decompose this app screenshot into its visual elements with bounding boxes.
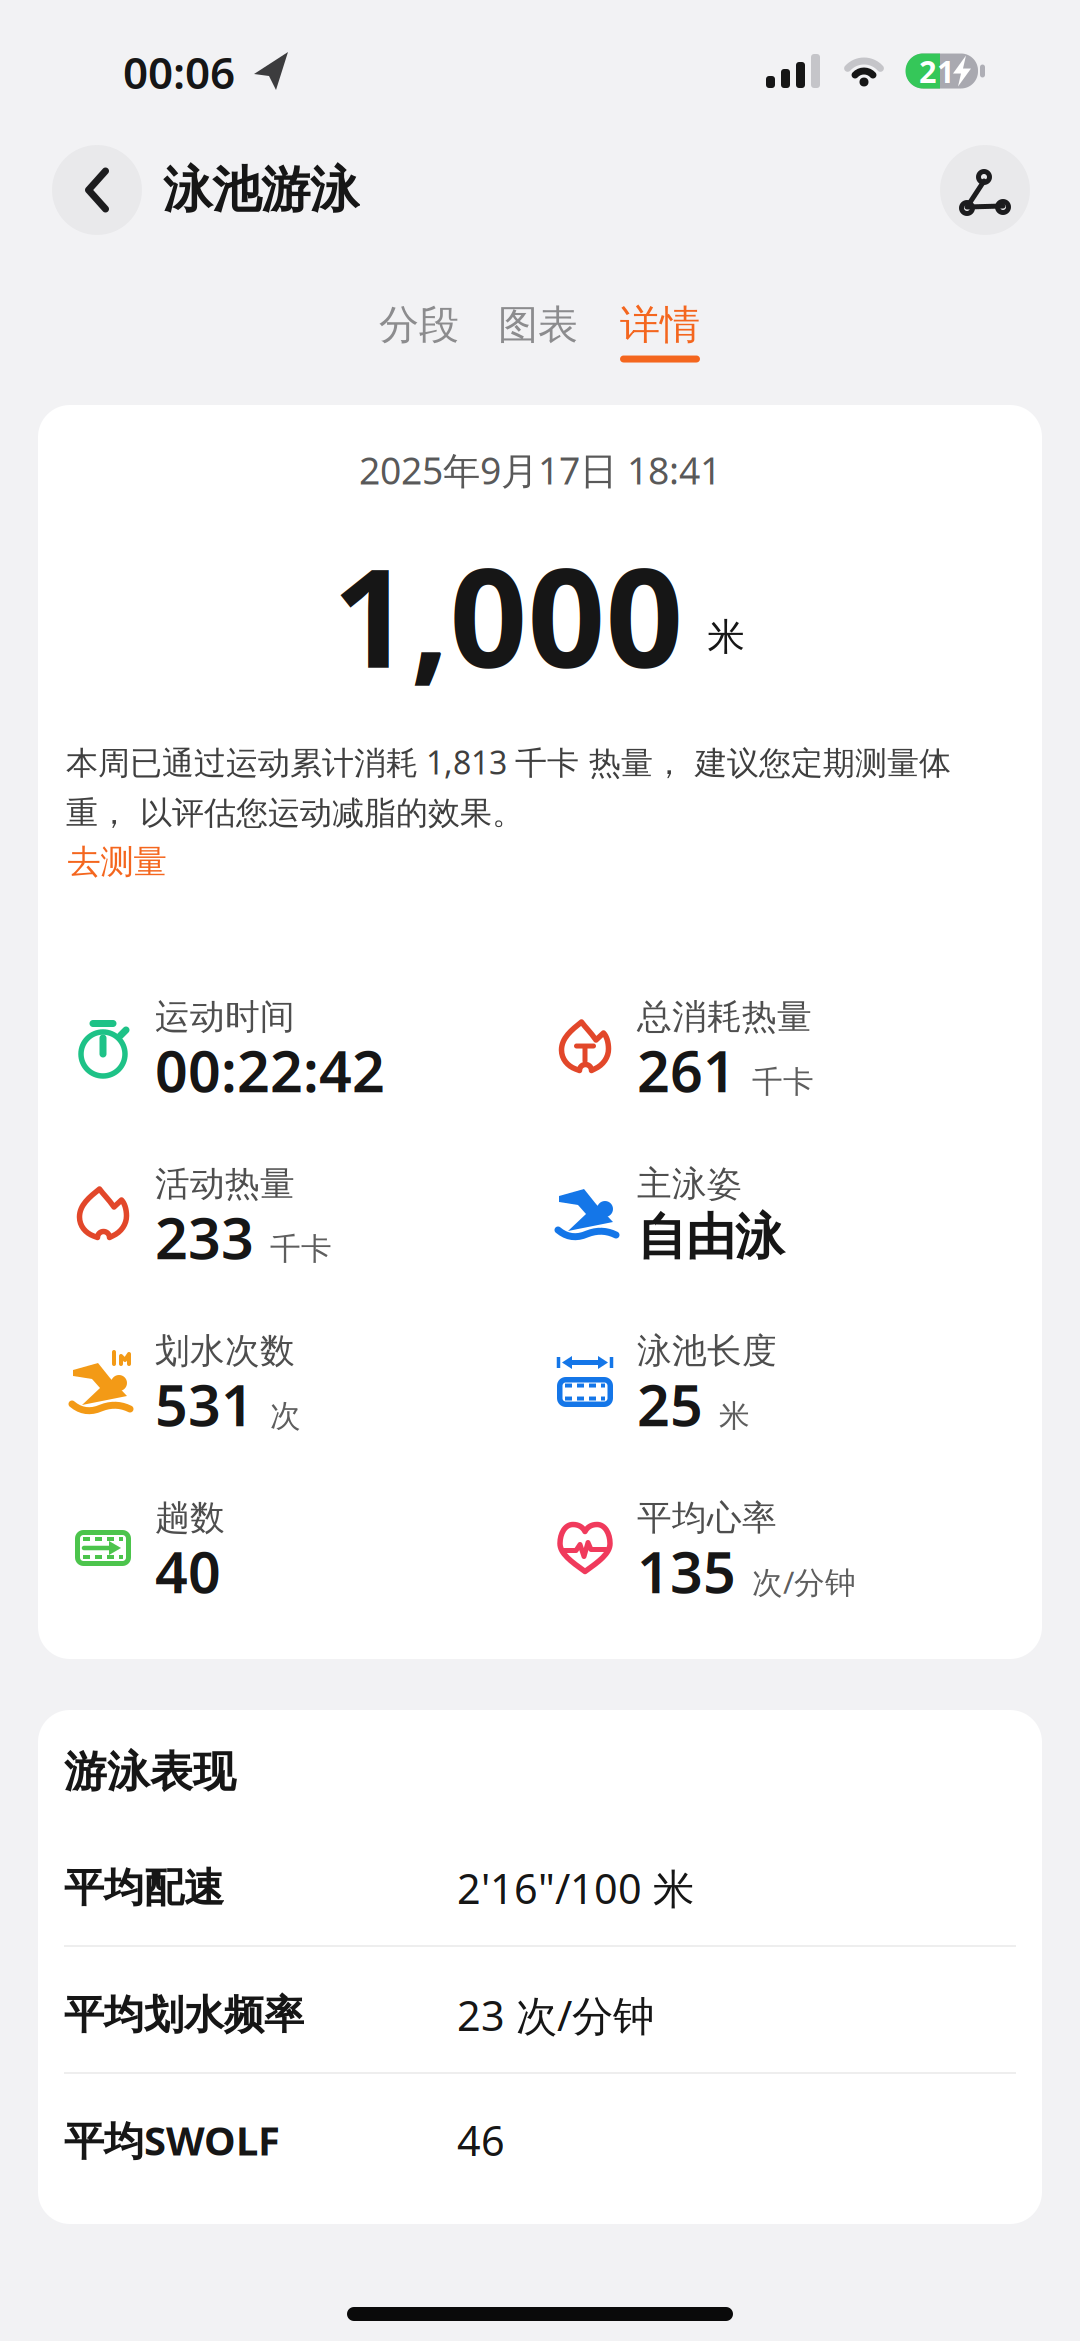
staticText: 1,000	[332, 525, 683, 705]
staticText: 46	[457, 2113, 505, 2167]
staticText: 2'16"/100 米	[457, 1861, 694, 1915]
staticText: 重， 以评估您运动减脂的效果。	[66, 793, 524, 833]
staticText: 米	[719, 1397, 750, 1435]
staticText: 主泳姿	[637, 1163, 742, 1205]
staticText: 233	[155, 1199, 254, 1275]
staticText: 活动热量	[155, 1163, 295, 1205]
staticText: 图表	[498, 300, 578, 349]
staticText: 261	[637, 1032, 736, 1108]
button[interactable]: 详情	[620, 300, 700, 349]
staticText: 平均心率	[637, 1497, 777, 1539]
button[interactable]: 分段	[379, 300, 459, 349]
staticText: 划水次数	[155, 1330, 295, 1372]
staticText: 泳池游泳	[163, 160, 359, 220]
staticText: 135	[637, 1533, 736, 1609]
staticText: 游泳表现	[64, 1746, 236, 1798]
staticText: 次	[270, 1397, 301, 1435]
staticText: 平均SWOLF	[64, 2113, 280, 2166]
staticText: 千卡	[752, 1063, 814, 1101]
staticText: 总消耗热量	[637, 996, 812, 1038]
staticText: 2025年9月17日 18:41	[359, 445, 721, 495]
staticText: 千卡	[270, 1230, 332, 1268]
staticText: 分段	[379, 300, 459, 349]
staticText: 531	[155, 1366, 254, 1442]
staticText: 运动时间	[155, 996, 295, 1038]
button[interactable]: Back	[52, 145, 142, 235]
staticText: 00:06	[123, 43, 235, 101]
button[interactable]: 图表	[498, 300, 578, 349]
staticText: 平均配速	[64, 1863, 224, 1912]
staticText: 40	[155, 1533, 221, 1609]
button[interactable]: Share	[940, 145, 1030, 235]
staticText: 25	[637, 1366, 703, 1442]
staticText: 次/分钟	[752, 1561, 856, 1602]
staticText: 00:22:42	[155, 1032, 385, 1108]
staticText: 泳池长度	[637, 1330, 777, 1372]
staticText: 21	[919, 51, 955, 91]
staticText: 趟数	[155, 1497, 225, 1539]
staticText: 去测量	[67, 841, 166, 882]
staticText: 23 次/分钟	[457, 1988, 654, 2042]
staticText: 米	[707, 614, 744, 660]
staticText: 详情	[620, 300, 700, 349]
button[interactable]: 去测量	[67, 841, 166, 882]
staticText: 本周已通过运动累计消耗 1,813 千卡 热量， 建议您定期测量体	[66, 741, 951, 783]
staticText: 平均划水频率	[64, 1990, 304, 2039]
staticText: 自由泳	[637, 1207, 784, 1267]
